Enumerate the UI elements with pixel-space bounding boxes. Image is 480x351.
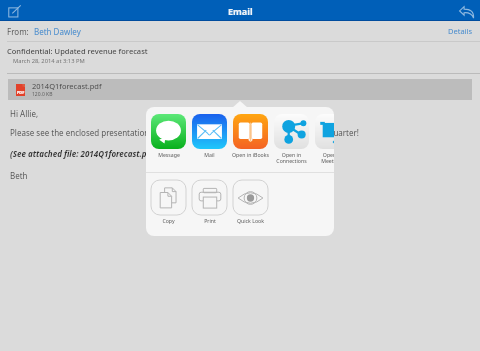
staticText: Copy [162,217,175,224]
staticText: Open in Meetings [321,151,334,165]
staticText: Email [228,5,253,17]
button[interactable]: Mail [189,114,230,158]
button[interactable]: Reply [456,1,476,21]
staticText: March 28, 2014 at 3:13 PM [13,57,85,65]
staticText: Print [204,217,216,224]
button[interactable]: Details [448,26,473,36]
button[interactable]: Open in Connections [271,114,312,165]
button[interactable]: PDF [8,79,472,100]
staticText: From: [7,26,29,37]
staticText: PDF [17,90,25,95]
button[interactable]: Message [148,114,189,158]
staticText: 2014Q1forecast.pdf [32,81,102,91]
staticText: 120.0 KB [32,91,53,98]
button[interactable]: Beth Dawley [34,26,81,37]
staticText: (See attached file: 2014Q1forecast.pdf) [10,148,158,159]
staticText: Quick Look [237,217,264,224]
staticText: Beth [10,170,28,181]
button[interactable]: Copy [146,180,192,224]
staticText: Please see the enclosed presentation wit… [10,127,359,138]
staticText: Open in Connections [276,151,307,165]
staticText: Mail [204,151,215,158]
staticText: Open in iBooks [232,151,269,158]
button[interactable]: Compose message [4,1,24,21]
button[interactable]: Quick Look [227,180,274,224]
button[interactable]: Open in iBooks [230,114,271,158]
staticText: Confidential: Updated revenue forecast [7,46,148,56]
staticText: Message [158,151,180,158]
staticText: Hi Allie, [10,108,39,119]
button[interactable]: Open in Meetings [312,114,334,165]
button[interactable]: Print [186,180,233,224]
